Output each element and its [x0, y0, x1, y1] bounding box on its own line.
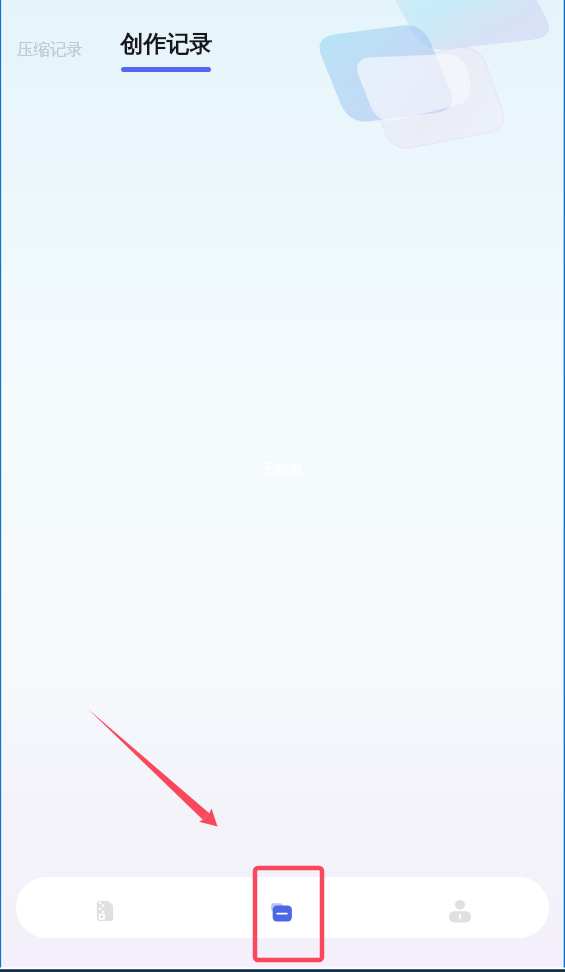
- button[interactable]: 压缩记录: [14, 36, 86, 63]
- button[interactable]: 创作记录: [120, 30, 212, 72]
- button[interactable]: Creation records: [193, 877, 371, 938]
- staticText: 创作记录: [120, 30, 212, 59]
- button[interactable]: Compression records: [16, 877, 193, 938]
- button[interactable]: Profile: [371, 877, 549, 938]
- staticText: 压缩记录: [17, 39, 83, 60]
- staticText: 无数据: [262, 461, 303, 478]
